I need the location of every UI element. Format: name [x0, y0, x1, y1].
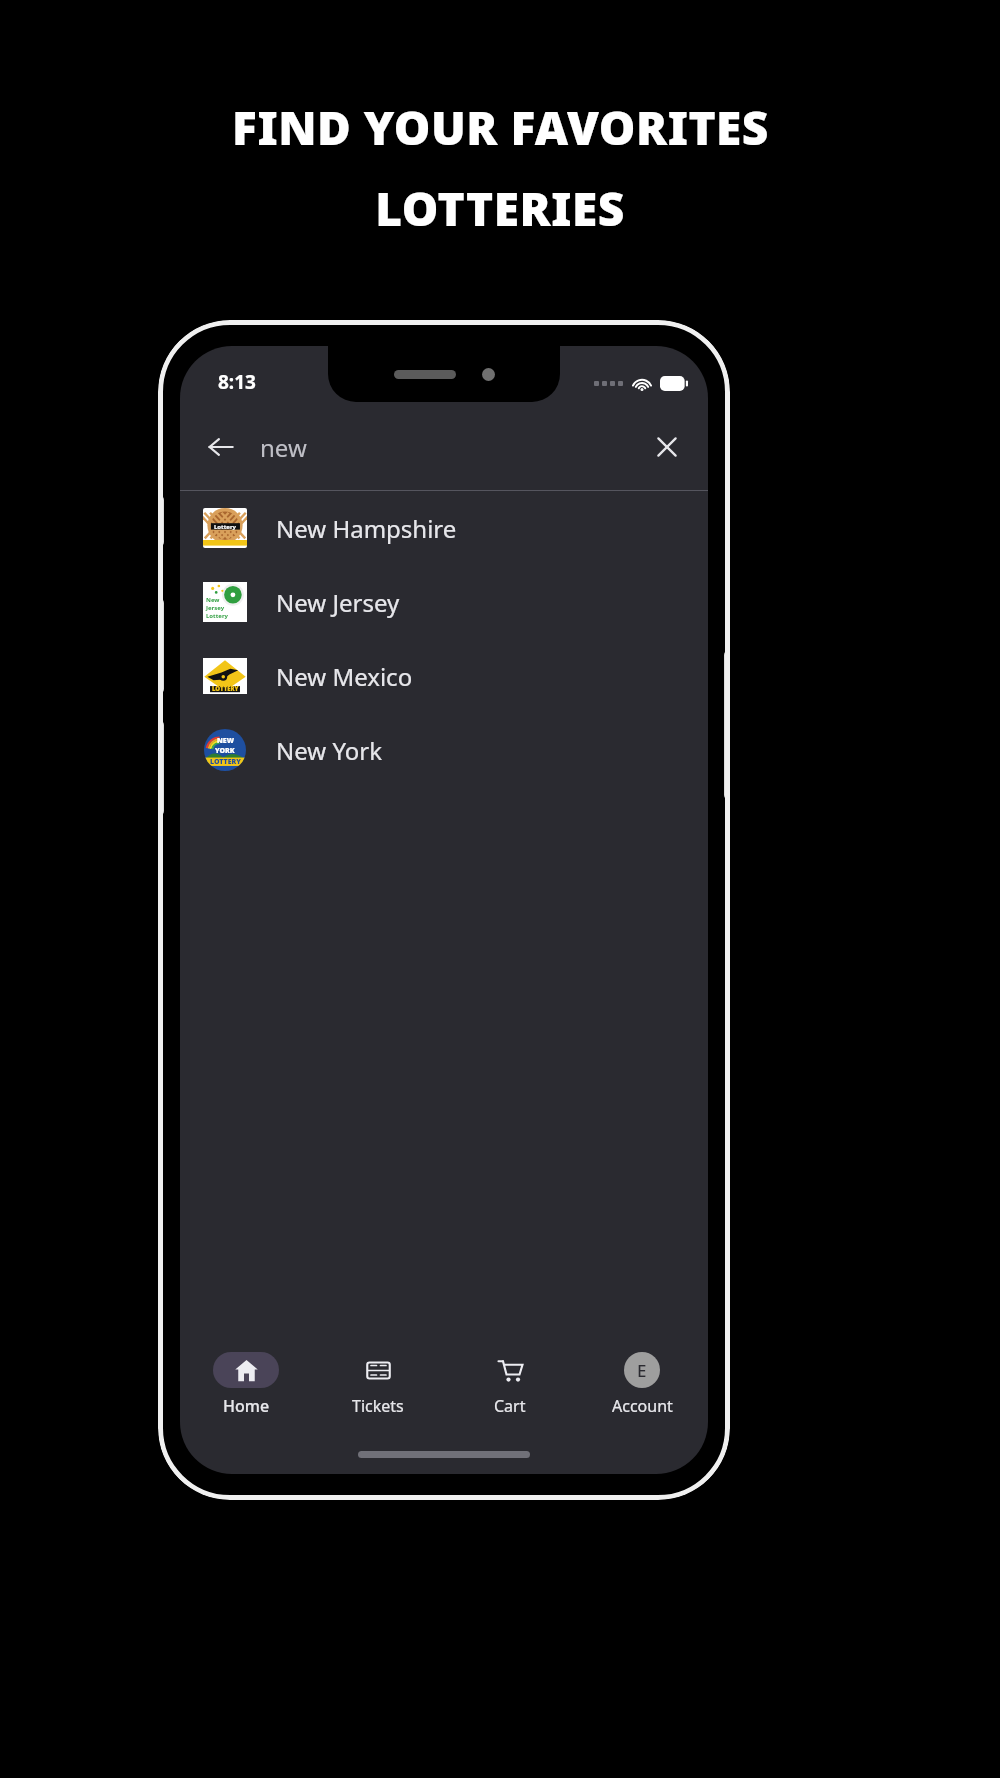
- staticText: New Mexico: [276, 660, 413, 693]
- button[interactable]: Clear search: [644, 424, 690, 470]
- staticText: Tickets: [352, 1395, 404, 1417]
- staticText: Lottery: [214, 523, 237, 531]
- staticText: Home: [223, 1395, 270, 1417]
- staticText: New: [206, 596, 220, 604]
- button[interactable]: Home: [180, 1334, 312, 1434]
- button[interactable]: NEW: [180, 713, 708, 787]
- staticText: 8:13: [218, 369, 256, 395]
- staticText: E: [637, 1359, 647, 1382]
- button[interactable]: E: [576, 1334, 708, 1434]
- staticText: Account: [612, 1395, 673, 1417]
- staticText: New Jersey: [276, 586, 400, 619]
- staticText: LOTTERY: [210, 757, 241, 767]
- staticText: FIND YOUR FAVORITES: [232, 96, 769, 159]
- staticText: LOTTERY: [212, 685, 239, 693]
- button[interactable]: New: [180, 565, 708, 639]
- staticText: Jersey: [206, 604, 225, 612]
- button[interactable]: Cart: [444, 1334, 576, 1434]
- staticText: New Hampshire: [276, 512, 457, 545]
- button[interactable]: LOTTERY: [180, 639, 708, 713]
- button[interactable]: Tickets: [312, 1334, 444, 1434]
- staticText: LOTTERIES: [375, 177, 625, 240]
- button[interactable]: Back: [198, 424, 244, 470]
- button[interactable]: Lottery: [180, 491, 708, 565]
- staticText: YORK: [215, 746, 235, 756]
- staticText: Lottery: [206, 612, 229, 620]
- staticText: NEW: [217, 736, 234, 746]
- staticText: New York: [276, 734, 383, 767]
- staticText: Cart: [494, 1395, 526, 1417]
- button[interactable]: new: [260, 431, 644, 464]
